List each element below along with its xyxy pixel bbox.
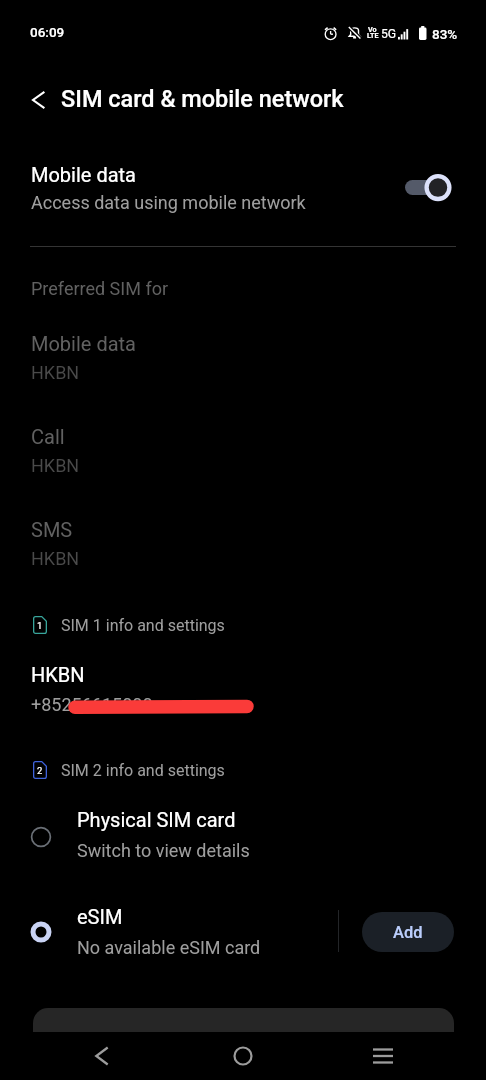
- staticText: Mobile data: [31, 332, 136, 355]
- button[interactable]: Back: [80, 1034, 124, 1078]
- button[interactable]: Navigate up: [17, 78, 60, 121]
- staticText: HKBN: [31, 362, 80, 383]
- staticText: SIM 1 info and settings: [61, 616, 225, 635]
- staticText: Access data using mobile network: [31, 192, 306, 213]
- button[interactable]: Add: [362, 912, 454, 952]
- staticText: Switch to view details: [77, 840, 250, 861]
- button[interactable]: 2: [0, 747, 486, 793]
- staticText: Preferred SIM for: [31, 278, 169, 299]
- staticText: 83%: [432, 26, 458, 42]
- staticText: No available eSIM card: [77, 937, 261, 958]
- staticText: HKBN: [31, 663, 85, 686]
- staticText: HKBN: [31, 548, 80, 569]
- button[interactable]: Mobile data: [0, 148, 486, 224]
- button[interactable]: SMS: [0, 502, 486, 572]
- button[interactable]: 1: [0, 602, 486, 648]
- staticText: 1: [37, 620, 43, 631]
- staticText: 06:09: [30, 24, 65, 40]
- button[interactable]: Home: [221, 1034, 265, 1078]
- staticText: 2: [37, 765, 43, 776]
- staticText: Mobile data: [31, 163, 136, 186]
- staticText: Add: [393, 923, 423, 942]
- staticText: 5G: [381, 27, 397, 41]
- button[interactable]: Call: [0, 409, 486, 479]
- staticText: eSIM: [77, 905, 123, 928]
- staticText: SMS: [31, 518, 73, 541]
- staticText: SIM 2 info and settings: [61, 761, 225, 780]
- button[interactable]: Recent apps: [361, 1034, 405, 1078]
- button[interactable]: Physical SIM card: [0, 794, 486, 870]
- staticText: Vo: [368, 25, 377, 33]
- staticText: Physical SIM card: [77, 808, 236, 831]
- staticText: SIM card & mobile network: [61, 85, 344, 113]
- staticText: LTE: [367, 31, 379, 39]
- button[interactable]: eSIM: [0, 891, 330, 967]
- button[interactable]: HKBN: [0, 652, 486, 724]
- staticText: +85256615000: [31, 694, 153, 715]
- button[interactable]: Mobile data: [0, 316, 486, 386]
- button[interactable]: Mobile data on: [400, 170, 458, 206]
- staticText: HKBN: [31, 455, 80, 476]
- staticText: Call: [31, 425, 65, 448]
